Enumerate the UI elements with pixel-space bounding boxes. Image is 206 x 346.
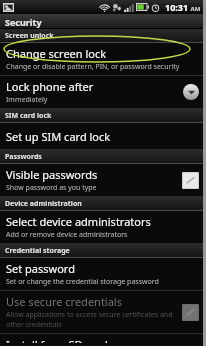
button[interactable]: Visible passwords checkbox — [182, 172, 199, 189]
staticText: Show password as you type — [6, 183, 97, 193]
staticText: Install from SD card — [6, 337, 108, 343]
staticText: 10:31 — [165, 1, 189, 13]
staticText: Lock phone after — [6, 79, 94, 94]
staticText: Allow applications to access secure cert… — [6, 310, 178, 330]
button[interactable]: Set up SIM card lock — [0, 123, 203, 149]
staticText: Add or remove device administrators — [6, 230, 128, 240]
button[interactable]: Select device administrators — [0, 211, 203, 243]
staticText: Set password — [6, 261, 75, 276]
button[interactable]: Set password — [0, 258, 203, 290]
staticText: Use secure credentials — [6, 294, 122, 309]
staticText: Set up SIM card lock — [6, 129, 111, 144]
staticText: Set or change the credential storage pas… — [6, 277, 159, 287]
staticText: Security — [5, 16, 42, 28]
button[interactable]: Change screen lock — [0, 43, 203, 75]
staticText: SIM card lock — [5, 111, 52, 121]
button[interactable]: Visible passwords — [0, 164, 203, 196]
button[interactable]: Install from SD card — [0, 334, 203, 346]
button[interactable]: Lock phone after — [0, 76, 203, 108]
button[interactable]: Use secure credentials checkbox — [182, 304, 199, 321]
staticText: Visible passwords — [6, 167, 98, 182]
button[interactable]: Expand lock timeout options — [183, 84, 199, 100]
staticText: Device administration — [5, 199, 82, 209]
staticText: Immediately — [6, 95, 48, 105]
button[interactable]: Use secure credentials — [0, 291, 203, 333]
staticText: Select device administrators — [6, 214, 151, 229]
staticText: Screen unlock — [5, 31, 54, 41]
staticText: Passwords — [5, 152, 42, 162]
staticText: AM — [189, 5, 201, 13]
staticText: Change or disable pattern, PIN, or passw… — [6, 62, 180, 72]
staticText: Credential storage — [5, 246, 70, 256]
staticText: Change screen lock — [6, 46, 107, 61]
